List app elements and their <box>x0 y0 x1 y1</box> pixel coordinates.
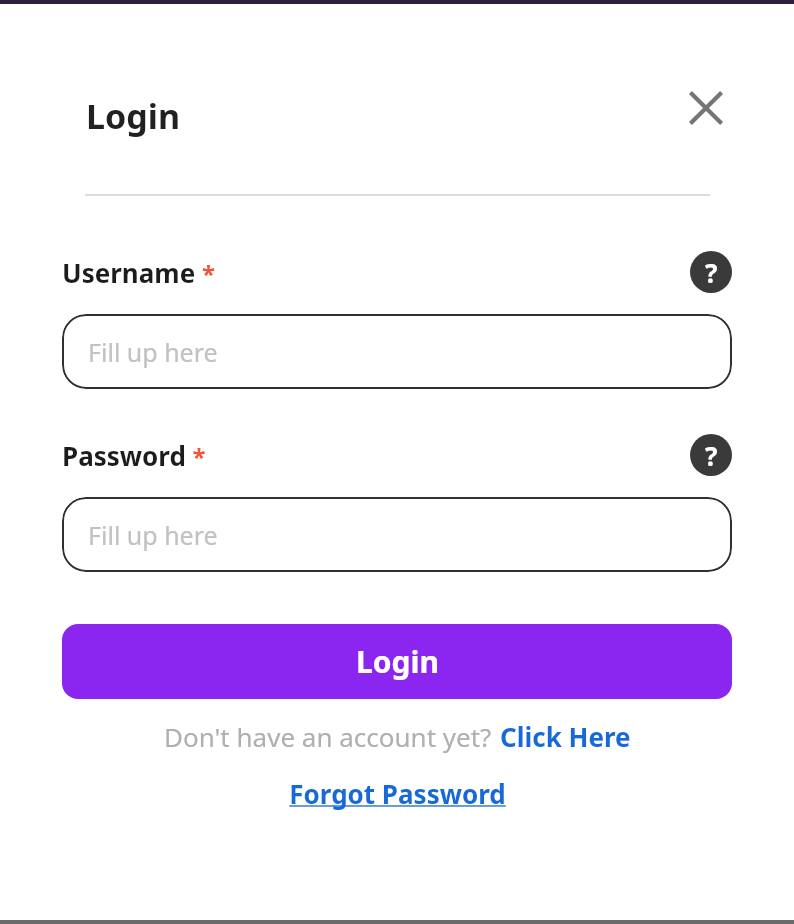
button[interactable]: Close <box>684 86 728 130</box>
staticText: Login <box>356 641 439 682</box>
staticText: Username * <box>62 255 215 290</box>
button[interactable]: Help <box>690 434 732 476</box>
staticText: Don't have an account yet? <box>164 719 492 754</box>
staticText: ? <box>705 255 718 290</box>
staticText: Fill up here <box>88 518 218 552</box>
staticText: Fill up here <box>88 335 218 369</box>
button[interactable]: Fill up here <box>62 314 732 389</box>
staticText: ? <box>705 438 718 473</box>
button[interactable]: Fill up here <box>62 497 732 572</box>
staticText: Click Here <box>500 719 631 754</box>
button[interactable]: Click Here <box>500 719 631 754</box>
staticText: Password * <box>62 438 206 473</box>
button[interactable]: Login <box>62 624 732 699</box>
staticText: Forgot Password <box>289 776 506 811</box>
button[interactable]: Forgot Password <box>289 776 506 811</box>
button[interactable]: Help <box>690 251 732 293</box>
staticText: Login <box>86 93 181 139</box>
